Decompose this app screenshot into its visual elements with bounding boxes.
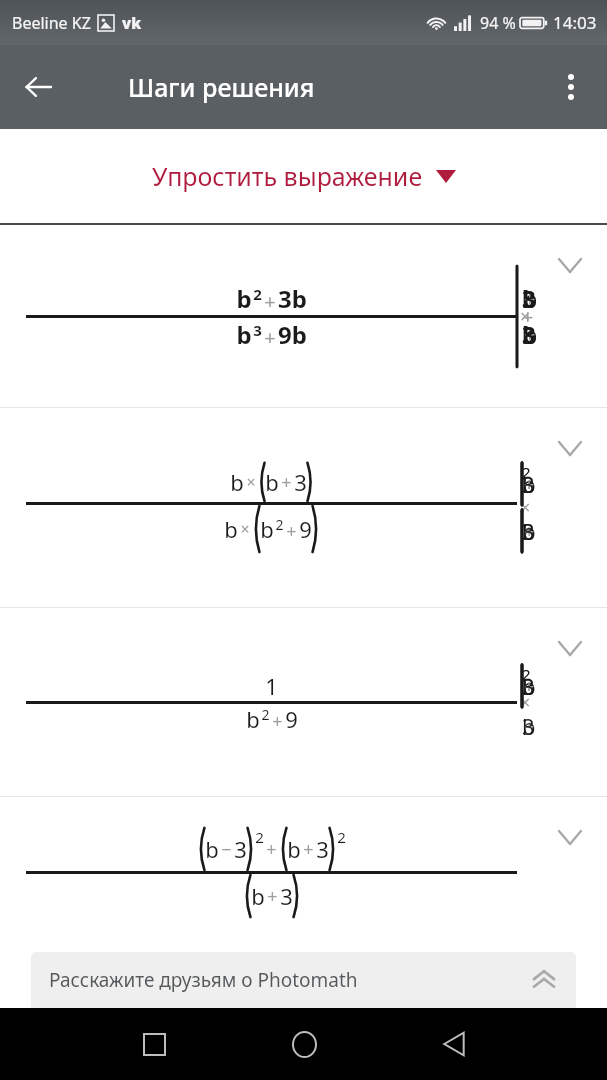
button[interactable]: Расскажите друзьям о Photomath: [31, 952, 576, 1008]
button[interactable]: b: [0, 225, 607, 407]
staticText: 14:03: [553, 11, 597, 34]
staticText: Упростить выражение: [152, 159, 423, 193]
staticText: b: [246, 704, 260, 734]
button[interactable]: Упростить выражение: [0, 129, 607, 223]
staticText: vk: [122, 13, 142, 33]
staticText: 94 %: [480, 12, 516, 34]
staticText: +: [266, 837, 277, 862]
button[interactable]: More options: [543, 59, 599, 115]
staticText: 9: [285, 704, 298, 734]
staticText: 3: [294, 467, 307, 497]
staticText: ×: [240, 518, 250, 540]
staticText: b: [265, 467, 279, 497]
staticText: 9: [299, 514, 312, 544]
button[interactable]: Back: [10, 59, 66, 115]
staticText: 3b: [278, 282, 307, 315]
staticText: 3: [316, 834, 329, 864]
staticText: Beeline KZ: [12, 12, 91, 34]
button[interactable]: Home: [275, 1015, 333, 1073]
staticText: Расскажите друзьям о Photomath: [49, 967, 358, 993]
staticText: 2: [275, 515, 284, 534]
staticText: b: [236, 282, 252, 315]
staticText: 3: [234, 834, 247, 864]
staticText: Шаги решения: [128, 70, 315, 104]
staticText: b: [205, 834, 219, 864]
staticText: b: [236, 318, 252, 351]
staticText: b: [230, 467, 244, 497]
staticText: +: [267, 884, 278, 909]
button[interactable]: b: [0, 408, 607, 607]
staticText: b: [287, 834, 301, 864]
staticText: 2: [255, 827, 264, 847]
staticText: b: [260, 514, 274, 544]
staticText: 3: [253, 320, 262, 340]
staticText: b: [251, 881, 265, 911]
button[interactable]: 1: [0, 608, 607, 796]
staticText: 2: [253, 284, 262, 304]
staticText: 9b: [278, 318, 307, 351]
button[interactable]: Recent apps: [125, 1015, 183, 1073]
staticText: +: [264, 324, 276, 351]
staticText: +: [286, 519, 297, 544]
staticText: +: [272, 709, 283, 734]
staticText: +: [303, 837, 314, 862]
staticText: +: [281, 470, 292, 495]
staticText: +: [264, 288, 276, 315]
staticText: 1: [265, 671, 278, 701]
button[interactable]: b: [0, 797, 607, 947]
button[interactable]: Back: [425, 1015, 483, 1073]
staticText: 2: [337, 827, 346, 847]
staticText: −: [221, 837, 232, 862]
staticText: b: [224, 514, 238, 544]
staticText: ×: [246, 471, 256, 493]
staticText: 3: [280, 881, 293, 911]
staticText: 2: [261, 705, 270, 724]
